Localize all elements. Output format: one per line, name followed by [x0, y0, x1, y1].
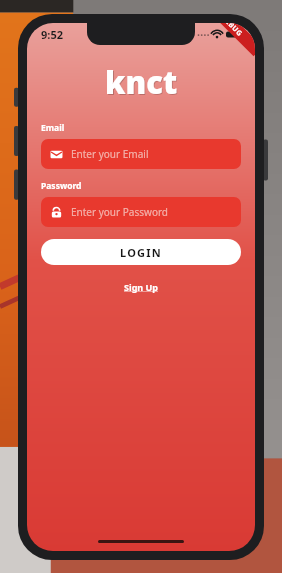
staticText: knct	[106, 62, 179, 104]
staticText: knct	[105, 61, 178, 103]
button[interactable]: Sign Up	[121, 278, 162, 296]
staticText: Enter your Password	[71, 205, 169, 219]
staticText: LOGIN	[120, 245, 162, 260]
button[interactable]: Enter your Password	[41, 197, 241, 227]
staticText: 9:52	[41, 27, 63, 42]
button[interactable]: Enter your Email	[41, 139, 241, 169]
button[interactable]: LOGIN	[41, 239, 241, 265]
staticText: Enter your Email	[71, 147, 149, 161]
staticText: Email	[41, 122, 65, 134]
staticText: DEBUG	[219, 23, 245, 39]
staticText: Password	[41, 180, 82, 192]
staticText: Sign Up	[124, 281, 159, 293]
